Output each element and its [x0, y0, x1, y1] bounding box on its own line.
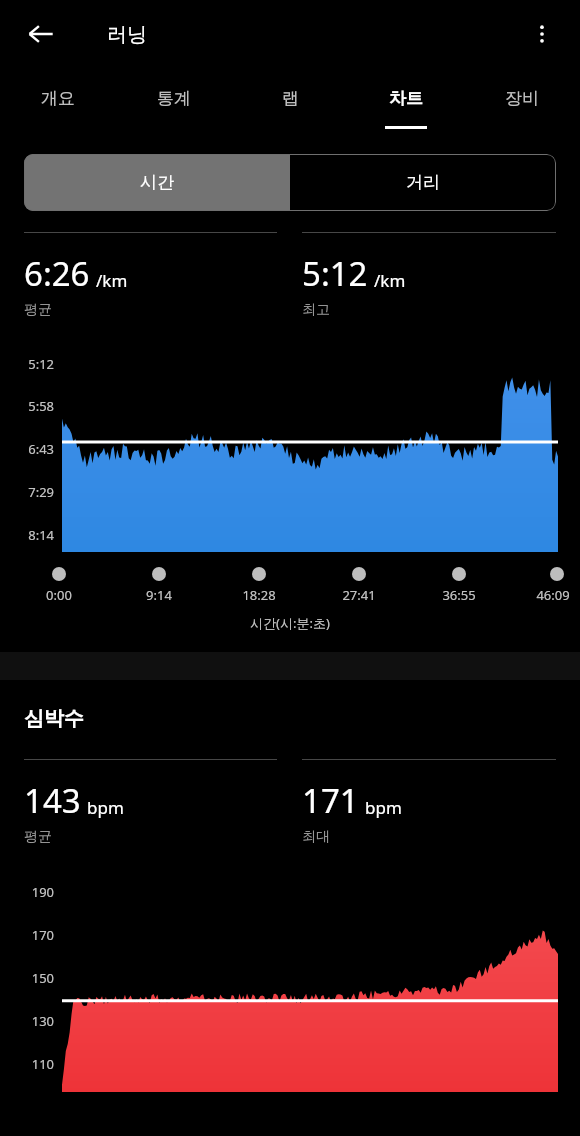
- staticText: 9:14: [133, 586, 185, 604]
- button[interactable]: 장비: [464, 68, 580, 140]
- button[interactable]: 통계: [116, 68, 232, 140]
- staticText: 랩: [282, 88, 299, 109]
- staticText: 5:12: [302, 251, 368, 296]
- staticText: 거리: [406, 172, 440, 193]
- button[interactable]: 차트: [348, 68, 464, 140]
- staticText: 171: [302, 778, 359, 823]
- staticText: 8:14: [0, 526, 54, 544]
- staticText: /km: [96, 269, 128, 292]
- staticText: 27:41: [333, 586, 385, 604]
- staticText: 통계: [157, 88, 191, 109]
- staticText: 150: [0, 969, 54, 987]
- staticText: 최고: [302, 301, 330, 319]
- staticText: 130: [0, 1012, 54, 1030]
- button[interactable]: 개요: [0, 68, 116, 140]
- staticText: 평균: [24, 301, 52, 319]
- staticText: 시간: [140, 172, 174, 193]
- staticText: 심박수: [24, 706, 84, 731]
- staticText: 장비: [505, 88, 539, 109]
- staticText: 190: [0, 883, 54, 901]
- staticText: 6:43: [0, 440, 54, 458]
- staticText: 110: [0, 1055, 54, 1073]
- staticText: 36:55: [433, 586, 485, 604]
- staticText: 6:26: [24, 251, 90, 296]
- staticText: bpm: [87, 796, 124, 819]
- staticText: 차트: [389, 88, 423, 109]
- staticText: 46:09: [527, 586, 579, 604]
- button[interactable]: 시간: [24, 154, 290, 211]
- button[interactable]: 거리: [290, 154, 556, 211]
- button[interactable]: Back: [17, 10, 65, 58]
- staticText: 5:58: [0, 397, 54, 415]
- staticText: 시간(시:분:초): [0, 614, 580, 632]
- staticText: /km: [374, 269, 406, 292]
- button[interactable]: 랩: [232, 68, 348, 140]
- staticText: 5:12: [0, 355, 54, 373]
- staticText: 최대: [302, 828, 330, 846]
- staticText: 개요: [41, 88, 75, 109]
- staticText: 러닝: [107, 22, 147, 47]
- button[interactable]: More options: [518, 10, 566, 58]
- staticText: 평균: [24, 828, 52, 846]
- staticText: 18:28: [233, 586, 285, 604]
- staticText: 0:00: [33, 586, 85, 604]
- staticText: 170: [0, 926, 54, 944]
- staticText: bpm: [365, 796, 402, 819]
- staticText: 143: [24, 778, 81, 823]
- staticText: 7:29: [0, 483, 54, 501]
